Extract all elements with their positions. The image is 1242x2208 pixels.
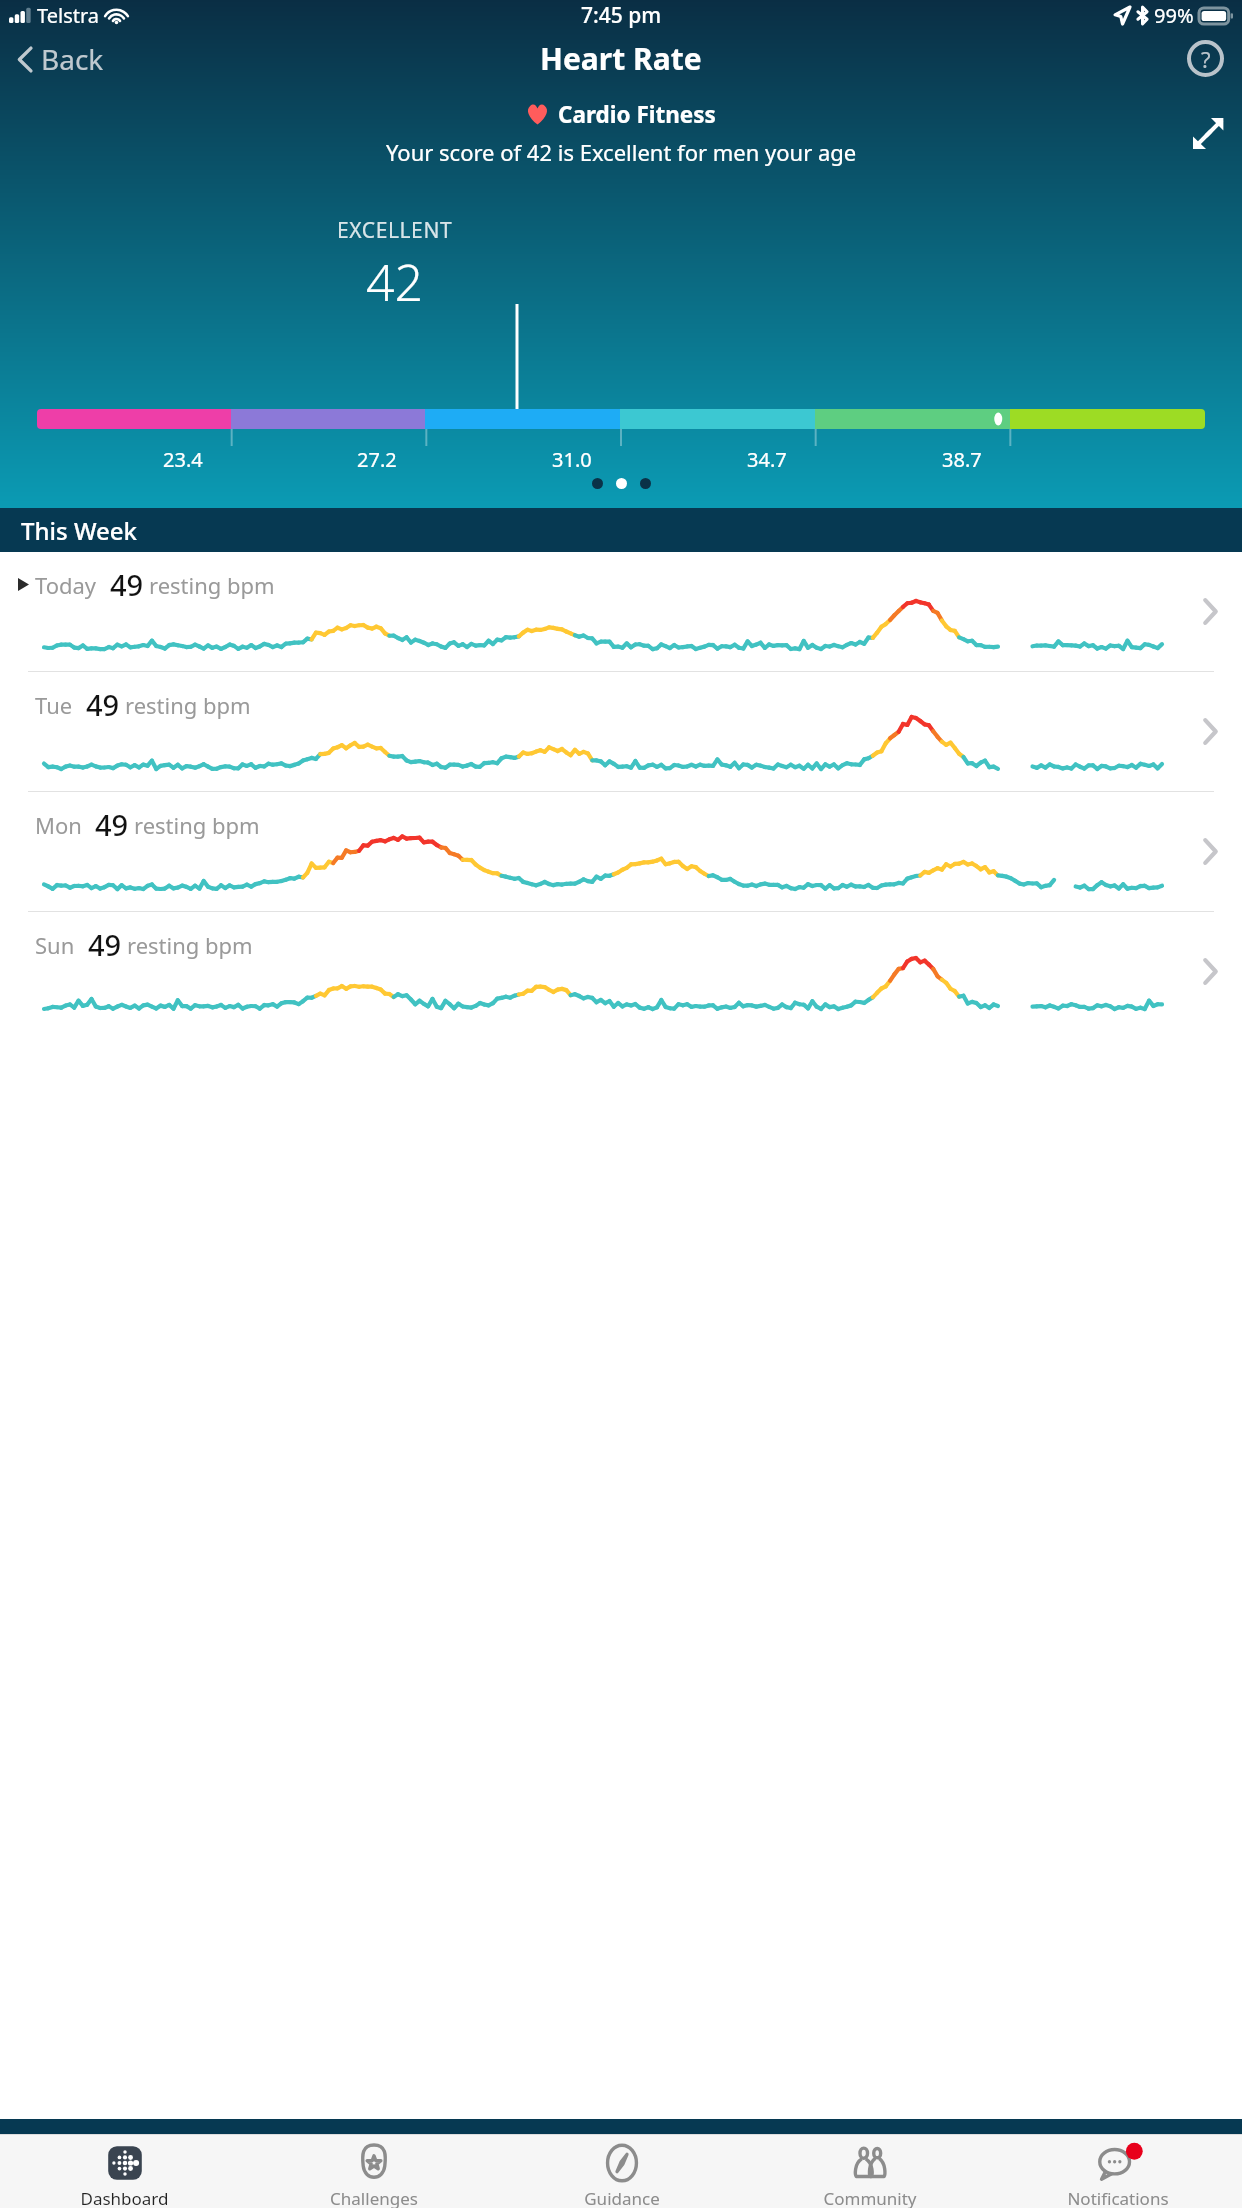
button[interactable]: Mon: [0, 792, 1242, 911]
staticText: resting bpm: [134, 810, 260, 840]
staticText: Your score of 42 is Excellent for men yo…: [386, 137, 857, 167]
button[interactable]: Back: [12, 35, 109, 83]
button[interactable]: Notifications: [994, 2135, 1242, 2208]
staticText: Back: [41, 40, 104, 78]
staticText: 34.7: [747, 446, 787, 473]
button[interactable]: Tue: [0, 672, 1242, 791]
staticText: 49: [95, 805, 129, 844]
button[interactable]: Guidance: [498, 2135, 746, 2208]
staticText: Challenges: [330, 2187, 418, 2208]
button[interactable]: Help: [1187, 40, 1224, 77]
staticText: 49: [88, 925, 122, 964]
staticText: 27.2: [357, 446, 397, 473]
staticText: Cardio Fitness: [558, 99, 716, 130]
staticText: Dashboard: [80, 2187, 169, 2208]
staticText: 23.4: [163, 446, 203, 473]
staticText: ?: [1201, 44, 1211, 74]
button[interactable]: Sun: [0, 912, 1242, 1031]
staticText: Community: [823, 2187, 917, 2208]
button[interactable]: Community: [746, 2135, 994, 2208]
staticText: This Week: [21, 514, 137, 547]
button[interactable]: Page: [640, 478, 651, 489]
staticText: Notifications: [1067, 2187, 1169, 2208]
staticText: Today: [35, 570, 97, 600]
staticText: 7:45 pm: [581, 1, 662, 30]
staticText: resting bpm: [149, 570, 275, 600]
button[interactable]: Expand: [1186, 111, 1231, 156]
staticText: 31.0: [552, 446, 592, 473]
button[interactable]: Page 2: [616, 478, 627, 489]
staticText: Sun: [35, 930, 75, 960]
button[interactable]: Page: [592, 478, 603, 489]
staticText: 38.7: [942, 446, 982, 473]
staticText: 42: [366, 248, 424, 316]
button[interactable]: Today: [0, 552, 1242, 671]
staticText: Heart Rate: [540, 38, 702, 79]
staticText: 49: [110, 565, 144, 604]
staticText: Telstra: [37, 2, 100, 29]
staticText: 49: [86, 685, 120, 724]
button[interactable]: Challenges: [249, 2135, 498, 2208]
staticText: resting bpm: [127, 930, 253, 960]
staticText: resting bpm: [125, 690, 251, 720]
staticText: Mon: [35, 810, 82, 840]
staticText: Tue: [35, 690, 73, 720]
staticText: 99%: [1154, 2, 1194, 29]
staticText: EXCELLENT: [337, 216, 453, 245]
button[interactable]: Dashboard: [0, 2135, 249, 2208]
staticText: Guidance: [584, 2187, 660, 2208]
